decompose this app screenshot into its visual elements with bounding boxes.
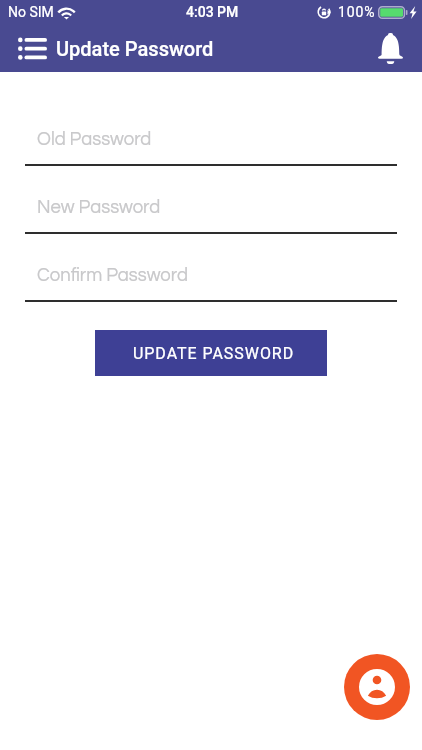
staticText: Confirm Password [37,266,188,285]
staticText: Old Password [37,130,152,149]
button[interactable]: Menu [18,33,47,63]
staticText: UPDATE PASSWORD [133,344,295,363]
button[interactable]: Account [344,654,410,720]
staticText: Update Password [56,37,214,60]
staticText: 4:03 PM [186,4,239,20]
button[interactable]: UPDATE PASSWORD [95,330,327,376]
staticText: New Password [37,198,161,217]
staticText: 100% [338,4,376,20]
button[interactable]: Notifications [373,30,407,64]
staticText: No SIM [8,4,54,20]
